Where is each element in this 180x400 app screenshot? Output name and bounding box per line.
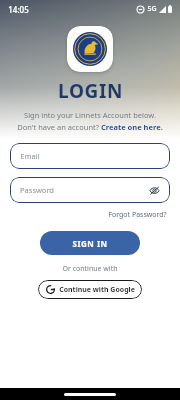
- button[interactable]: Email: [10, 143, 170, 169]
- button[interactable]: SIGN IN: [40, 231, 140, 255]
- staticText: 14:05: [8, 4, 29, 15]
- staticText: Or continue with: [62, 264, 118, 274]
- button[interactable]: Password: [10, 177, 170, 203]
- staticText: LOGIN: [58, 78, 123, 104]
- button[interactable]: Forgot Password?: [106, 208, 169, 222]
- staticText: Email: [20, 151, 40, 161]
- staticText: Forgot Password?: [108, 210, 167, 220]
- button[interactable]: Continue with Google: [38, 280, 142, 299]
- staticText: Don't have an account? Create one here.: [17, 122, 163, 132]
- staticText: 5G: [147, 4, 157, 14]
- staticText: SIGN IN: [72, 238, 108, 249]
- staticText: Continue with Google: [59, 285, 135, 295]
- staticText: Sign into your Linnets Account below.: [24, 110, 156, 120]
- button[interactable]: Show password: [148, 184, 160, 196]
- staticText: Password: [20, 185, 54, 195]
